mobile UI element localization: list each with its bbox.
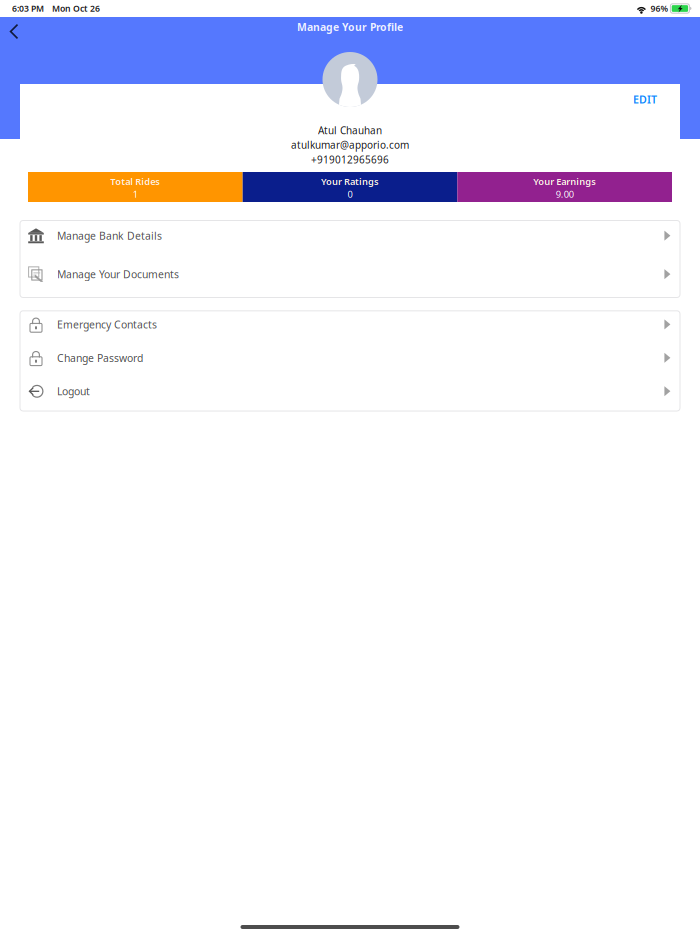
button[interactable]: Emergency Contacts <box>20 311 680 344</box>
button[interactable]: Back <box>3 19 25 43</box>
staticText: 96% <box>650 3 668 14</box>
staticText: Mon Oct 26 <box>52 3 100 14</box>
staticText: 6:03 PM <box>12 3 44 14</box>
staticText: Your Earnings <box>533 175 596 188</box>
button[interactable]: Logout <box>20 378 680 411</box>
staticText: Your Ratings <box>321 175 379 188</box>
button[interactable]: EDIT <box>623 84 680 111</box>
staticText: atulkumar@apporio.com <box>291 138 409 152</box>
staticText: Change Password <box>57 351 143 365</box>
staticText: +919012965696 <box>311 153 389 166</box>
staticText: EDIT <box>633 92 657 106</box>
staticText: Logout <box>57 384 90 398</box>
button[interactable]: Manage Bank Details <box>20 220 680 259</box>
staticText: Manage Your Documents <box>57 267 179 281</box>
staticText: 1 <box>133 188 138 200</box>
staticText: Manage Your Profile <box>297 20 403 34</box>
staticText: Atul Chauhan <box>318 123 382 137</box>
button[interactable]: Change Password <box>20 344 680 378</box>
staticText: Total Rides <box>110 175 160 188</box>
button[interactable]: Manage Your Documents <box>20 259 680 297</box>
staticText: Manage Bank Details <box>57 229 162 243</box>
staticText: Emergency Contacts <box>57 317 157 332</box>
staticText: 9.00 <box>556 188 574 200</box>
staticText: 0 <box>347 188 352 200</box>
